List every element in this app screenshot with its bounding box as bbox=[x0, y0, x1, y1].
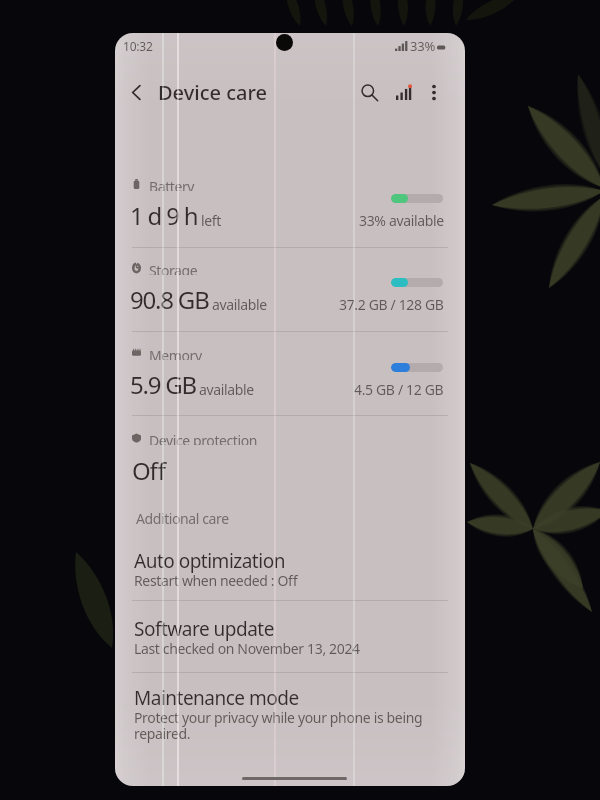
staticText: 90.8 GB bbox=[130, 283, 209, 316]
button[interactable]: Usage statistics bbox=[387, 76, 419, 108]
button[interactable]: Battery bbox=[115, 146, 465, 228]
staticText: Memory bbox=[149, 346, 202, 360]
staticText: Device protection bbox=[149, 431, 258, 445]
button[interactable]: Back bbox=[120, 76, 152, 108]
staticText: Software update bbox=[134, 616, 274, 642]
button[interactable]: Maintenance mode bbox=[115, 677, 465, 756]
staticText: Storage bbox=[149, 261, 198, 275]
staticText: 10:32 bbox=[123, 38, 153, 54]
button[interactable]: Memory bbox=[115, 315, 465, 397]
staticText: 33% available bbox=[359, 211, 444, 230]
staticText: 4.5 GB / 12 GB bbox=[354, 380, 444, 399]
staticText: 1 d 9 h bbox=[130, 199, 198, 232]
staticText: Battery bbox=[149, 177, 195, 191]
staticText: Additional care bbox=[136, 509, 229, 528]
staticText: 37.2 GB / 128 GB bbox=[339, 295, 444, 314]
staticText: Maintenance mode bbox=[134, 685, 299, 711]
button[interactable]: Auto optimization bbox=[115, 540, 465, 603]
button[interactable]: Software update bbox=[115, 608, 465, 671]
staticText: Protect your privacy while your phone is… bbox=[134, 708, 423, 743]
staticText: available bbox=[199, 380, 254, 399]
staticText: 5.9 GB bbox=[130, 368, 196, 401]
staticText: Last checked on November 13, 2024 bbox=[134, 639, 360, 658]
staticText: Auto optimization bbox=[134, 548, 285, 574]
staticText: Off bbox=[132, 454, 165, 487]
button[interactable]: More options bbox=[418, 76, 450, 108]
staticText: available bbox=[212, 295, 267, 314]
button[interactable]: Storage bbox=[115, 230, 465, 312]
staticText: Restart when needed : Off bbox=[134, 571, 298, 590]
staticText: 33% bbox=[410, 37, 436, 55]
staticText: Device care bbox=[158, 79, 267, 106]
staticText: left bbox=[201, 211, 221, 230]
button[interactable]: Search bbox=[353, 76, 385, 108]
